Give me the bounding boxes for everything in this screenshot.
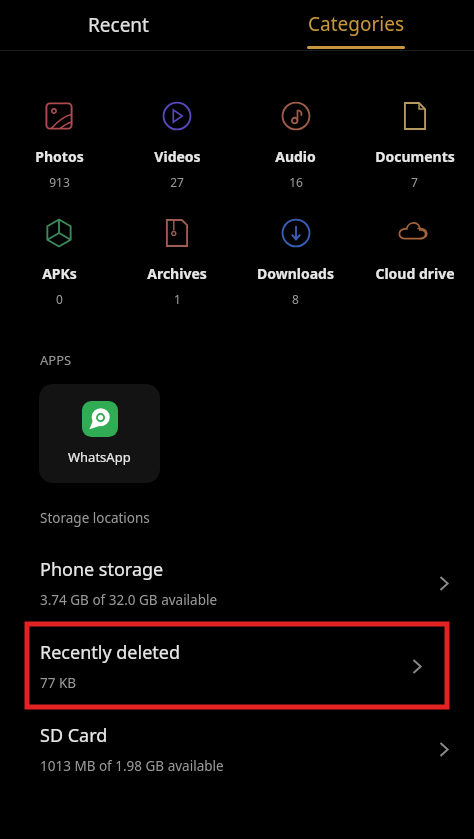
button[interactable]: Documents	[355, 95, 474, 190]
other: Open Recently deleted	[403, 653, 429, 679]
button[interactable]: Downloads	[236, 212, 355, 307]
staticText: Recently deleted	[40, 640, 181, 665]
staticText: 0	[56, 291, 63, 307]
button[interactable]: SD Card	[0, 707, 474, 790]
button[interactable]: WhatsApp	[39, 384, 160, 483]
staticText: APKs	[42, 264, 77, 283]
button[interactable]: Photos	[0, 95, 118, 190]
staticText: 8	[292, 291, 299, 307]
staticText: Documents	[375, 147, 455, 166]
staticText: WhatsApp	[68, 448, 131, 466]
staticText: SD Card	[40, 723, 108, 748]
button[interactable]: Archives	[118, 212, 236, 307]
staticText: Downloads	[257, 264, 334, 283]
staticText: 77 KB	[40, 674, 77, 692]
button[interactable]: Recent	[0, 0, 237, 50]
staticText: Recent	[88, 12, 149, 38]
staticText: Photos	[35, 147, 84, 166]
button[interactable]: Videos	[118, 95, 236, 190]
staticText: 7	[411, 174, 418, 190]
staticText: Archives	[147, 264, 207, 283]
staticText: Categories	[308, 11, 404, 37]
button[interactable]: Audio	[236, 95, 355, 190]
staticText: Storage locations	[40, 509, 150, 527]
button[interactable]: Recently deleted	[27, 624, 447, 707]
staticText: 1	[174, 291, 181, 307]
staticText: 27	[170, 174, 184, 190]
button[interactable]: APKs	[0, 212, 118, 307]
staticText: 1013 MB of 1.98 GB available	[40, 757, 224, 775]
staticText: 16	[289, 174, 303, 190]
staticText: APPS	[40, 351, 72, 369]
staticText: 3.74 GB of 32.0 GB available	[40, 591, 218, 609]
other: Open Phone storage	[430, 570, 456, 596]
other: Open SD Card	[430, 736, 456, 762]
staticText: Audio	[275, 147, 316, 166]
staticText: Videos	[154, 147, 201, 166]
button[interactable]: Phone storage	[0, 541, 474, 624]
button[interactable]: Cloud drive	[355, 212, 474, 307]
staticText: Cloud drive	[375, 264, 455, 283]
staticText: 913	[49, 174, 70, 190]
button[interactable]: Categories	[237, 0, 474, 50]
staticText: Phone storage	[40, 557, 164, 582]
